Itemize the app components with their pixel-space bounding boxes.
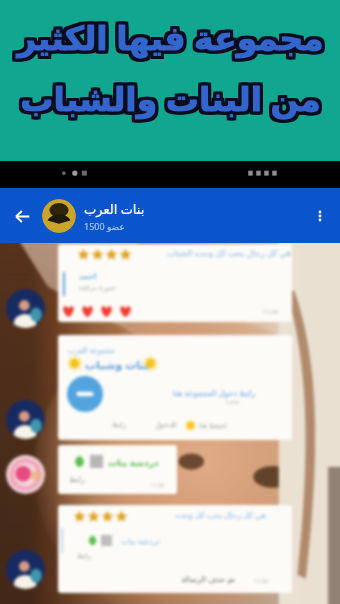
staticText: مجموعة فيها الكثير bbox=[15, 13, 322, 58]
staticText: من البنات والشباب bbox=[18, 78, 319, 123]
staticText: احمد bbox=[79, 272, 97, 281]
staticText: مجموعة فيها الكثير bbox=[19, 17, 326, 62]
staticText: اضغط هنا bbox=[199, 421, 227, 431]
staticText: مجموعة فيها الكثير bbox=[17, 12, 324, 57]
staticText: 11:30 bbox=[254, 577, 269, 584]
staticText: من البنات والشباب bbox=[22, 78, 323, 123]
staticText: من البنات والشباب bbox=[18, 74, 319, 119]
staticText: من البنات والشباب bbox=[19, 73, 320, 118]
staticText: مجموعة فيها الكثير bbox=[14, 14, 321, 59]
staticText: مجموعة فيها الكثير bbox=[14, 16, 321, 61]
staticText: 11:26 bbox=[150, 481, 165, 488]
staticText: مجموعة فيها الكثير bbox=[16, 18, 323, 63]
staticText: t.me bbox=[226, 398, 239, 406]
staticText: دردشة بنات bbox=[121, 535, 160, 546]
staticText: من البنات والشباب bbox=[17, 75, 318, 120]
staticText: مجموعة فيها الكثير bbox=[16, 12, 323, 57]
staticText: 1500 عضو bbox=[84, 220, 125, 232]
staticText: من البنات والشباب bbox=[20, 73, 321, 118]
staticText: رابط bbox=[69, 475, 85, 484]
staticText: رابط bbox=[77, 552, 91, 560]
button[interactable]: More options bbox=[306, 202, 334, 230]
staticText: مجموعة فيها الكثير bbox=[14, 12, 321, 57]
staticText: مجموعة فيها الكثير bbox=[14, 18, 321, 63]
staticText: دردشة بنات bbox=[108, 456, 159, 468]
button[interactable]: هي كل رجال يحب كل وحده bbox=[58, 505, 292, 593]
staticText: مجموعة فيها الكثير bbox=[20, 16, 327, 61]
staticText: بنات العرب bbox=[84, 200, 145, 218]
staticText: من البنات والشباب bbox=[21, 79, 322, 124]
staticText: من البنات والشباب bbox=[23, 79, 324, 124]
staticText: بنات وشباب bbox=[85, 357, 149, 372]
staticText: صورة مرفقة bbox=[79, 283, 116, 293]
button[interactable]: مجموعة العرب bbox=[58, 335, 292, 440]
staticText: من البنات والشباب bbox=[23, 76, 324, 121]
button[interactable]: هي كل رجال يحب كل وحده الشباب bbox=[58, 244, 292, 322]
staticText: مجموعة العرب bbox=[68, 345, 115, 355]
button[interactable]: Back bbox=[6, 200, 38, 232]
staticText: من البنات والشباب bbox=[23, 77, 324, 122]
staticText: من البنات والشباب bbox=[17, 73, 318, 118]
staticText: من البنات والشباب bbox=[17, 76, 318, 121]
staticText: من البنات والشباب bbox=[21, 73, 322, 118]
staticText: من البنات والشباب bbox=[19, 79, 320, 124]
staticText: مجموعة فيها الكثير bbox=[15, 17, 322, 62]
staticText: مجموعة فيها الكثير bbox=[17, 18, 324, 63]
staticText: 11:24 bbox=[263, 308, 279, 316]
staticText: رابط bbox=[112, 421, 126, 429]
staticText: مجموعة فيها الكثير bbox=[18, 12, 325, 57]
button[interactable]: دردشة بنات bbox=[58, 445, 177, 494]
staticText: هي كل رجال يحب كل وحده bbox=[138, 509, 266, 520]
staticText: من البنات والشباب bbox=[17, 79, 318, 124]
staticText: مجموعة فيها الكثير bbox=[19, 13, 326, 58]
staticText: من البنات والشباب bbox=[20, 79, 321, 124]
staticText: مجموعة فيها الكثير bbox=[17, 15, 324, 60]
staticText: مجموعة فيها الكثير bbox=[20, 14, 327, 59]
staticText: هي كل رجال يحب كل وحده الشباب bbox=[135, 247, 291, 259]
staticText: من البنات والشباب bbox=[23, 75, 324, 120]
staticText: رابط دخول المجموعة هنا bbox=[141, 387, 255, 398]
staticText: مجموعة فيها الكثير bbox=[18, 18, 325, 63]
staticText: مجموعة فيها الكثير bbox=[20, 12, 327, 57]
staticText: تم حذف الرسالة bbox=[181, 573, 236, 584]
staticText: مجموعة فيها الكثير bbox=[20, 15, 327, 60]
staticText: من البنات والشباب bbox=[17, 77, 318, 122]
staticText: من البنات والشباب bbox=[22, 74, 323, 119]
staticText: من البنات والشباب bbox=[23, 73, 324, 118]
staticText: للدخول bbox=[155, 421, 177, 429]
staticText: مجموعة فيها الكثير bbox=[14, 15, 321, 60]
staticText: من البنات والشباب bbox=[20, 76, 321, 121]
staticText: مجموعة فيها الكثير bbox=[20, 18, 327, 63]
